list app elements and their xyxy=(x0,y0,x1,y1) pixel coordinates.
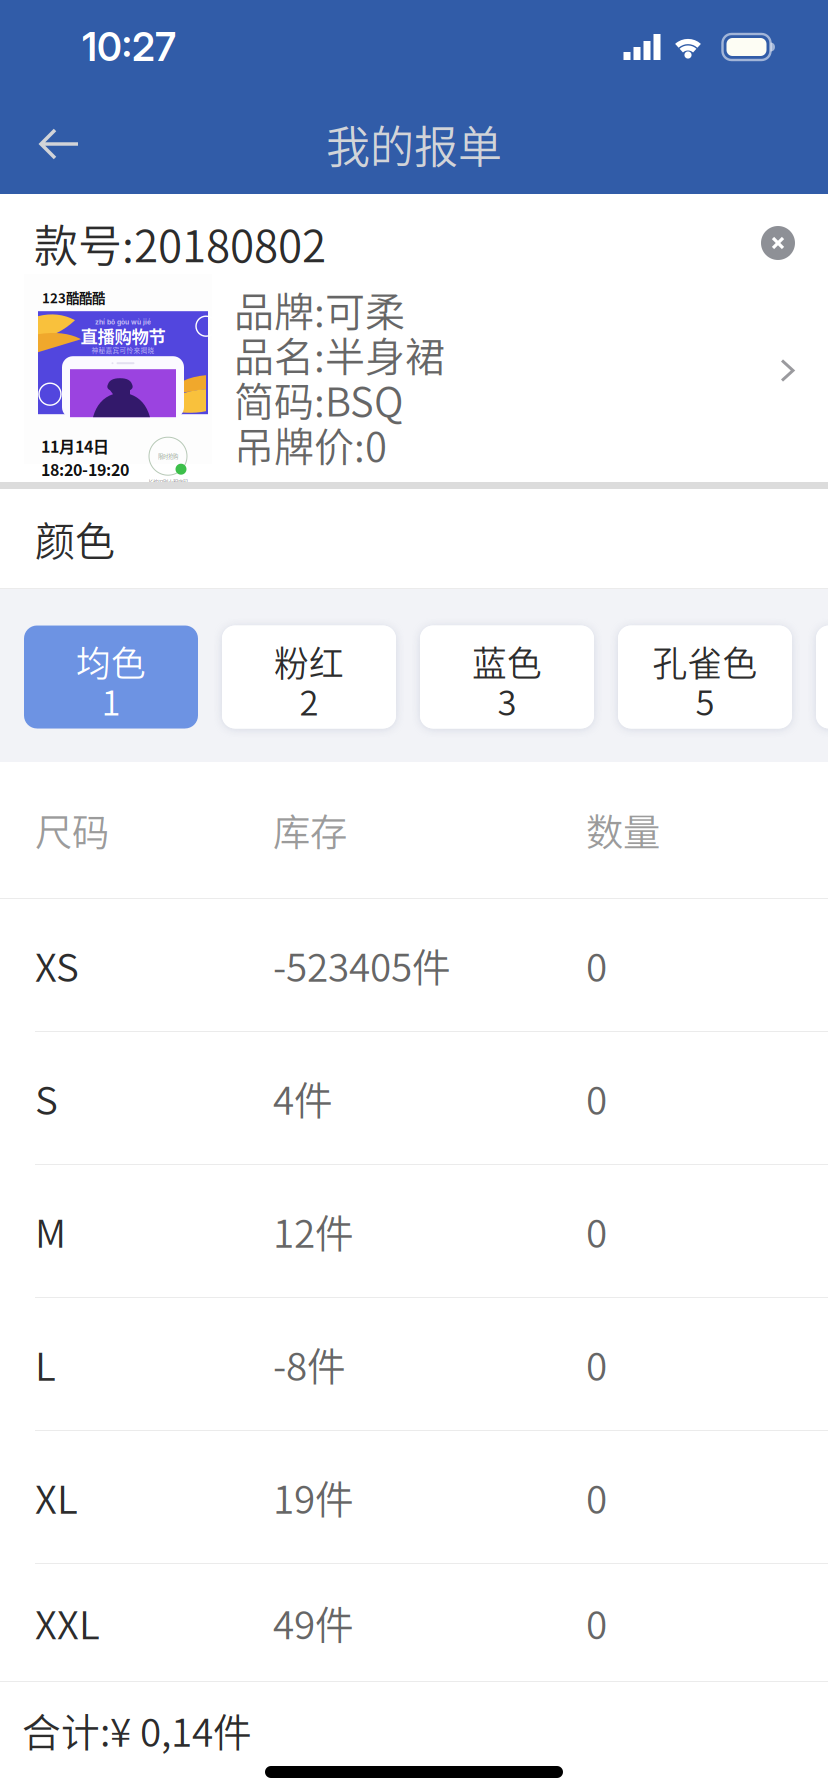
staticText: 我的报单 xyxy=(326,112,502,176)
staticText: 吊牌价:0 xyxy=(234,415,387,473)
staticText: 库存 xyxy=(273,803,347,857)
staticText: 5 xyxy=(695,675,714,726)
staticText: 0 xyxy=(586,1336,607,1392)
staticText: 3 xyxy=(497,675,516,726)
staticText: 孔雀色 xyxy=(652,636,757,687)
staticText: 11月14日 xyxy=(41,434,109,457)
staticText: -8件 xyxy=(273,1336,346,1392)
button[interactable]: 123酷酷酷 xyxy=(0,282,828,487)
staticText: 粉红 xyxy=(274,636,344,687)
staticText: 0 xyxy=(586,1594,607,1650)
staticText: 黑龙江哈尔滨市道里区 xyxy=(41,483,121,495)
staticText: S xyxy=(35,1070,58,1126)
button[interactable]: Back xyxy=(0,99,106,189)
staticText: 18:20-19:20 xyxy=(41,457,129,481)
staticText: M xyxy=(35,1203,66,1259)
staticText: 简码:BSQ xyxy=(234,370,403,428)
staticText: 0 xyxy=(586,1469,607,1525)
staticText: 0 xyxy=(586,937,607,993)
staticText: 品名:半身裙 xyxy=(234,325,445,383)
staticText: zhí bō gòu wù jié xyxy=(95,318,151,326)
staticText: L xyxy=(35,1336,56,1392)
staticText: XXL xyxy=(35,1594,100,1650)
staticText: 长按识别小程序码 xyxy=(148,478,188,486)
staticText: 49件 xyxy=(273,1594,354,1650)
staticText: 颜色 xyxy=(35,509,115,567)
staticText: 蓝色 xyxy=(472,636,542,687)
staticText: 均色 xyxy=(76,636,146,687)
staticText: 直播购物节 xyxy=(80,323,165,348)
staticText: 数量 xyxy=(586,803,660,857)
staticText: 0 xyxy=(586,1203,607,1259)
staticText: 123酷酷酷 xyxy=(42,288,105,307)
staticText: 1 xyxy=(101,675,120,726)
button[interactable]: 孔雀色 xyxy=(618,625,792,728)
button[interactable]: 黑色 xyxy=(816,625,828,728)
button[interactable]: 均色 xyxy=(24,625,198,728)
staticText: 神秘嘉宾可怜来揭晓 xyxy=(91,345,154,355)
staticText: 19件 xyxy=(273,1469,354,1525)
button[interactable]: 蓝色 xyxy=(420,625,594,728)
button[interactable]: Close xyxy=(754,219,802,267)
staticText: 合计:¥ 0,14件 xyxy=(22,1702,252,1758)
staticText: 尺码 xyxy=(35,803,109,857)
staticText: 4件 xyxy=(273,1070,333,1126)
staticText: 品牌:可柔 xyxy=(234,280,405,338)
staticText: 10:27 xyxy=(82,24,176,70)
staticText: 款号:20180802 xyxy=(34,211,326,275)
staticText: XL xyxy=(35,1469,78,1525)
staticText: 12件 xyxy=(273,1203,354,1259)
staticText: 2 xyxy=(299,675,318,726)
staticText: -523405件 xyxy=(273,937,451,993)
staticText: XS xyxy=(35,937,79,993)
button[interactable]: 粉红 xyxy=(222,625,396,728)
staticText: 0 xyxy=(586,1070,607,1126)
staticText: 限时抢购 xyxy=(158,452,178,460)
